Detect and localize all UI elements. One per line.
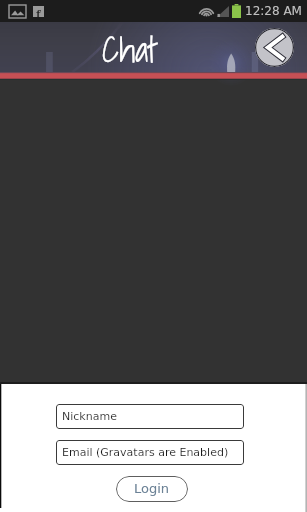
staticText: Nickname: [62, 410, 117, 423]
staticText: Chat: [102, 21, 158, 71]
button[interactable]: Login: [116, 476, 188, 502]
button[interactable]: Nickname: [56, 404, 244, 429]
staticText: 12:28 AM: [245, 4, 302, 18]
staticText: Login: [134, 481, 170, 496]
staticText: Email (Gravatars are Enabled): [62, 446, 229, 459]
staticText: f: [36, 6, 41, 17]
button[interactable]: Email (Gravatars are Enabled): [56, 440, 244, 465]
button[interactable]: Back: [255, 28, 294, 67]
